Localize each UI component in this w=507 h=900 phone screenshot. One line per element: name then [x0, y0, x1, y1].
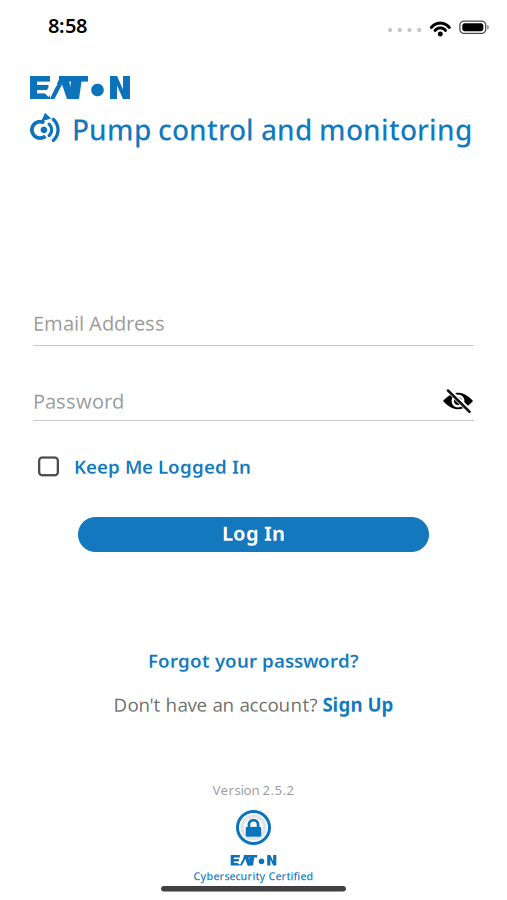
button[interactable]: Keep Me Logged In — [38, 454, 251, 479]
staticText: Log In — [222, 520, 285, 546]
button[interactable]: Email Address — [33, 310, 474, 346]
staticText: Version 2.5.2 — [212, 781, 294, 799]
staticText: Pump control and monitoring — [72, 111, 472, 148]
staticText: Forgot your password? — [148, 648, 359, 673]
button[interactable]: Forgot your password? — [148, 648, 359, 673]
button[interactable]: Password — [33, 388, 474, 421]
staticText: Cybersecurity Certified — [193, 869, 313, 883]
staticText: Email Address — [33, 310, 165, 336]
staticText: Don't have an account? — [113, 692, 317, 717]
button[interactable]: Show password — [442, 389, 474, 413]
button[interactable]: Log In — [78, 517, 429, 552]
staticText: Password — [33, 388, 124, 414]
staticText: 8:58 — [48, 12, 87, 39]
staticText: Keep Me Logged In — [74, 454, 251, 479]
staticText: Sign Up — [322, 692, 393, 717]
button[interactable]: Sign Up — [322, 692, 393, 717]
